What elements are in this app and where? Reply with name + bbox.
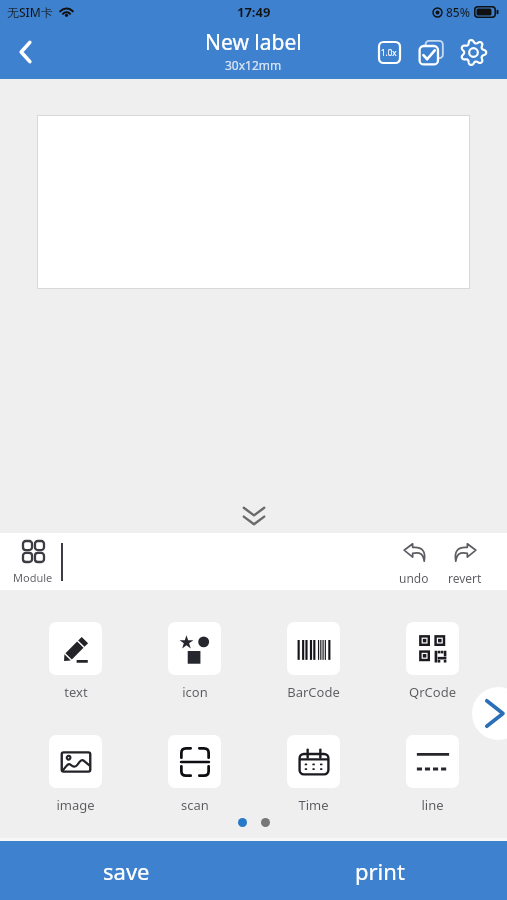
button[interactable]: Settings (453, 32, 493, 72)
button[interactable]: icon (147, 622, 242, 701)
button[interactable]: undo (398, 541, 430, 586)
staticText: print (355, 856, 405, 886)
staticText: BarCode (287, 683, 340, 701)
button[interactable]: line (385, 735, 480, 814)
button[interactable]: Module (13, 541, 53, 585)
staticText: save (103, 856, 150, 886)
button[interactable]: print (253, 841, 507, 900)
staticText: New label (205, 28, 302, 57)
staticText: Time (298, 796, 329, 814)
button[interactable]: text (28, 622, 123, 701)
staticText: icon (182, 683, 208, 701)
button[interactable]: Back (0, 26, 52, 78)
staticText: scan (181, 796, 209, 814)
staticText: 85% (446, 4, 470, 20)
button[interactable]: revert (446, 541, 484, 586)
staticText: 17:49 (237, 3, 271, 21)
button[interactable]: Zoom level (369, 32, 409, 72)
button[interactable]: save (0, 841, 253, 900)
staticText: undo (399, 570, 429, 586)
staticText: QrCode (409, 683, 456, 701)
button[interactable]: image (28, 735, 123, 814)
staticText: 30x12mm (225, 57, 282, 73)
button[interactable]: Time (266, 735, 361, 814)
button[interactable]: QrCode (385, 622, 480, 701)
button[interactable]: scan (147, 735, 242, 814)
staticText: text (64, 683, 88, 701)
staticText: revert (448, 570, 482, 586)
staticText: 1.0x (381, 47, 397, 58)
staticText: Module (13, 570, 53, 585)
button[interactable]: BarCode (266, 622, 361, 701)
staticText: image (56, 796, 95, 814)
button[interactable]: Expand (238, 500, 270, 532)
staticText: line (421, 796, 444, 814)
button[interactable]: Next page (472, 687, 507, 740)
button[interactable]: Select all (411, 32, 451, 72)
staticText: 无SIM卡 (7, 4, 53, 20)
